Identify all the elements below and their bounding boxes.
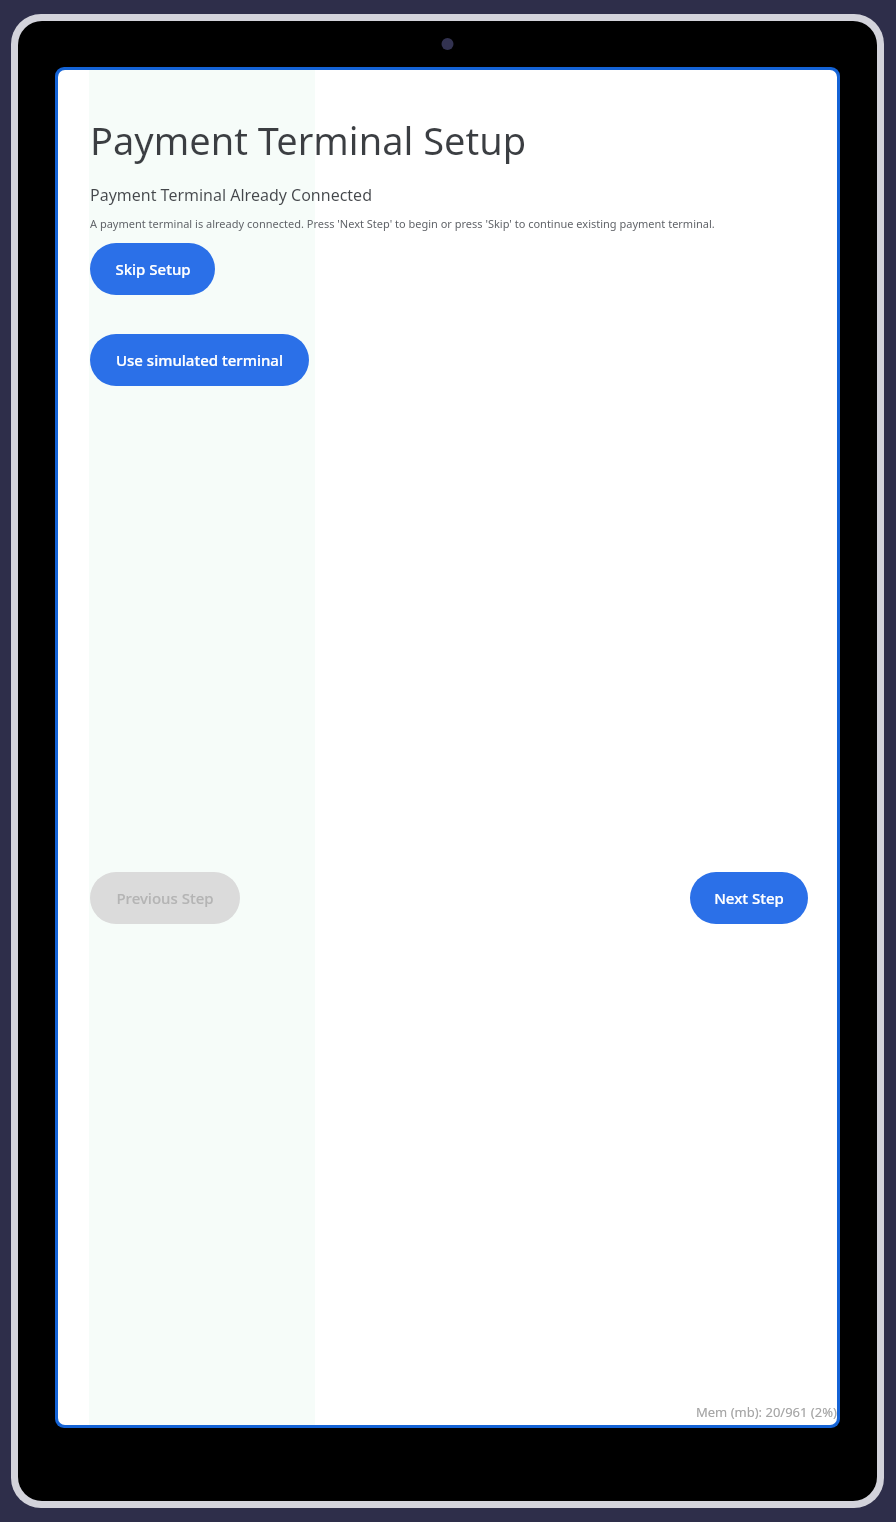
button[interactable]: Next Step bbox=[690, 872, 808, 924]
staticText: Next Step bbox=[714, 888, 784, 908]
button[interactable]: Previous Step bbox=[90, 872, 240, 924]
button[interactable]: Skip Setup bbox=[90, 243, 215, 295]
staticText: Skip Setup bbox=[115, 259, 191, 279]
staticText: Use simulated terminal bbox=[116, 350, 283, 370]
staticText: A payment terminal is already connected.… bbox=[90, 216, 715, 231]
staticText: Mem (mb): 20/961 (2%) bbox=[696, 1403, 837, 1421]
button[interactable]: Use simulated terminal bbox=[90, 334, 309, 386]
staticText: Payment Terminal Already Connected bbox=[90, 184, 372, 206]
staticText: Previous Step bbox=[116, 888, 214, 908]
staticText: Payment Terminal Setup bbox=[90, 114, 527, 166]
